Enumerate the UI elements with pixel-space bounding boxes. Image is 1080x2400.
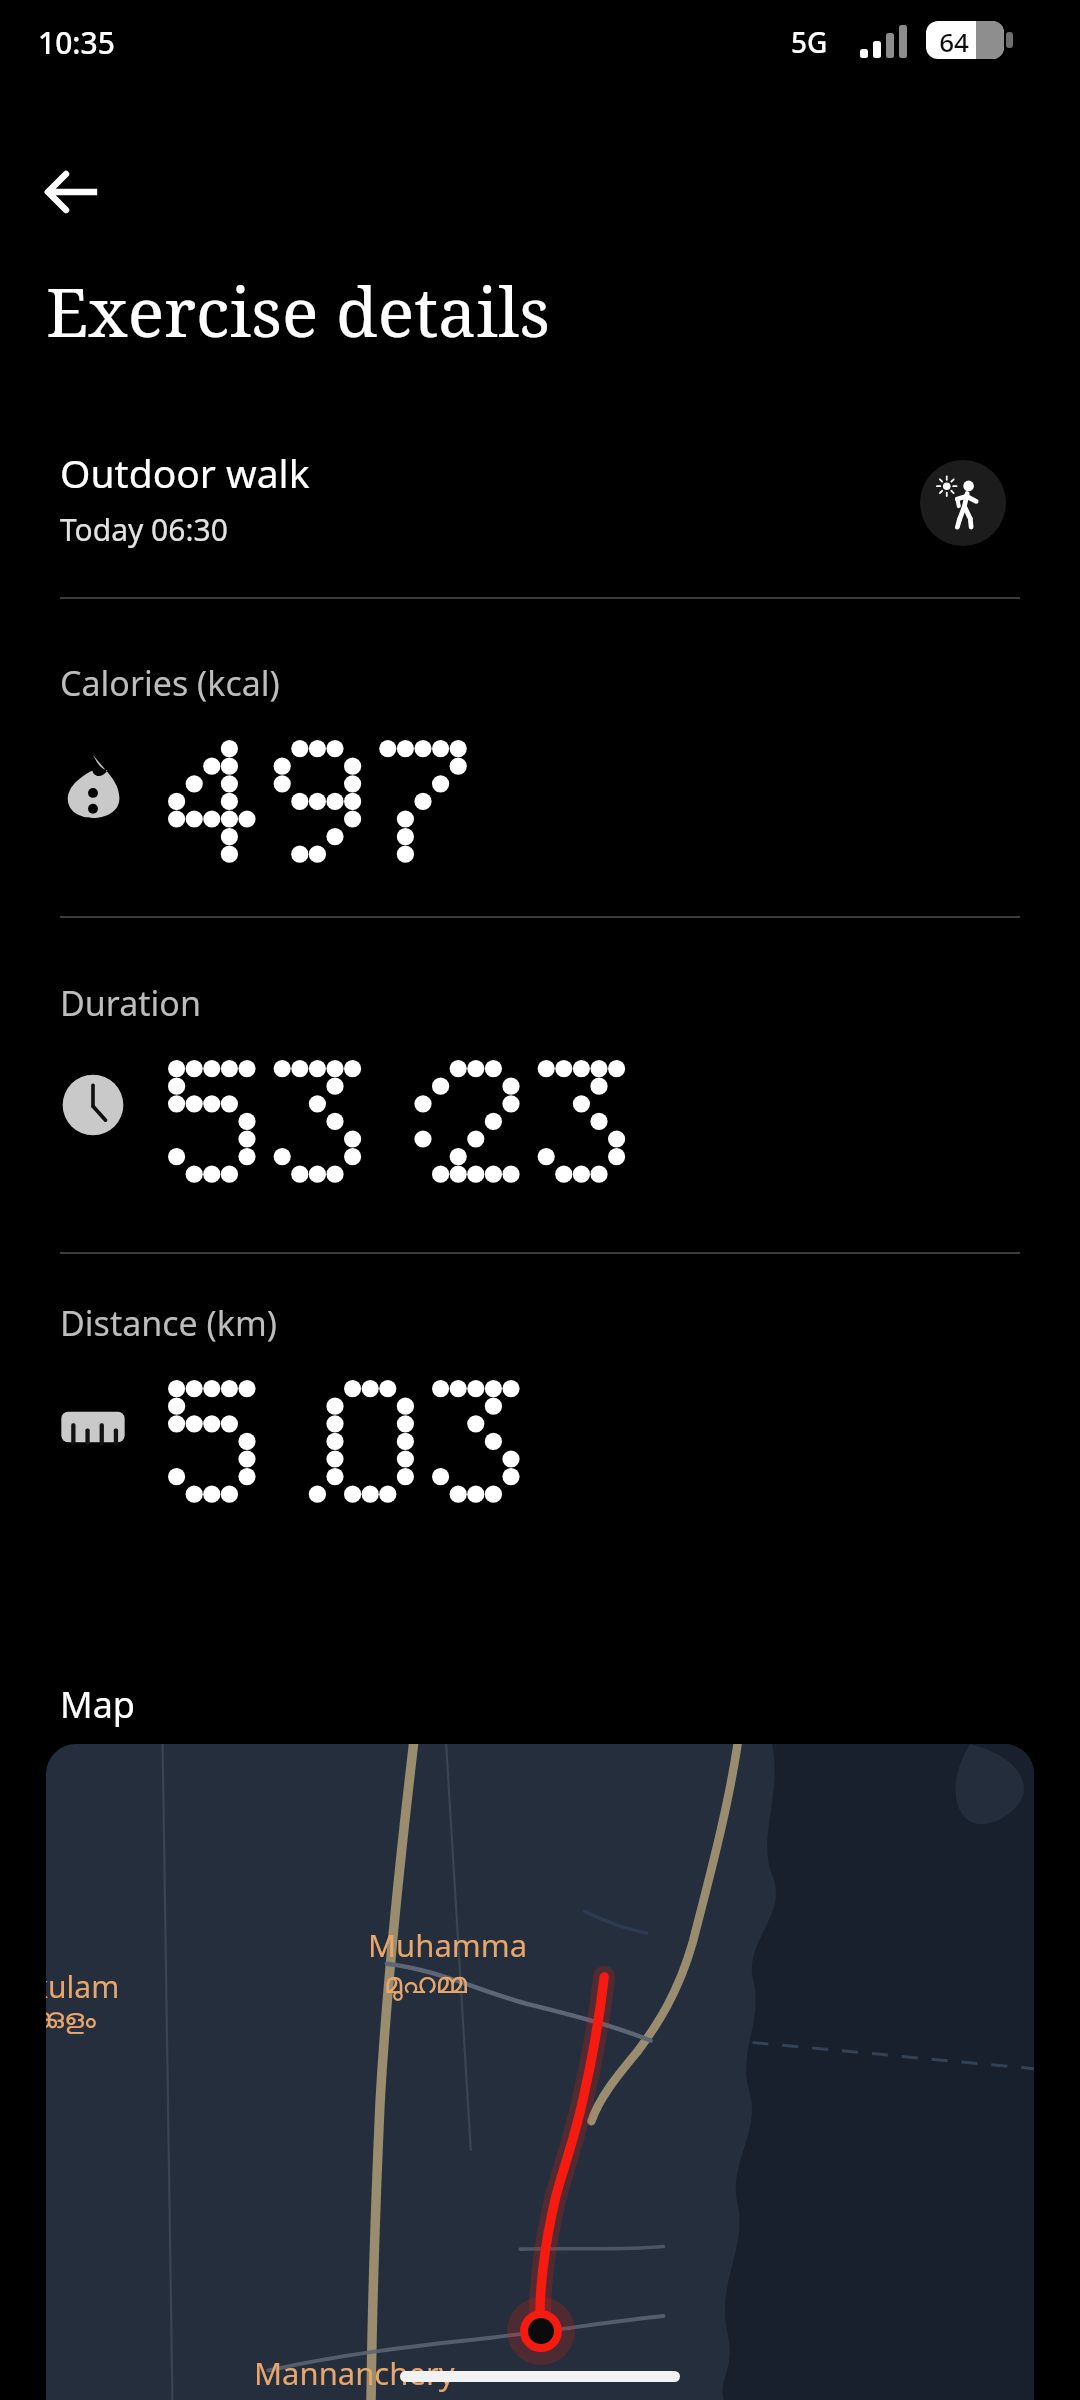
staticText: Distance (km) [60,1300,277,1346]
staticText: ക്കുളം [46,2006,96,2034]
staticText: Duration [60,980,201,1026]
button[interactable]: Outdoor walk activity type [920,460,1006,546]
staticText: Calories (kcal) [60,660,280,706]
staticText: 10:35 [38,22,115,63]
staticText: Today 06:30 [60,509,228,550]
staticText: 64 [928,24,980,59]
staticText: Muhamma [368,1924,528,1966]
staticText: Map [60,1680,135,1729]
button[interactable]: Route map [46,1744,1034,2400]
staticText: kulam [46,1966,120,2007]
staticText: മുഹമ്മ [384,1970,468,1999]
button[interactable]: Back [18,138,126,246]
staticText: Outdoor walk [60,446,310,499]
staticText: 5G [791,23,828,61]
staticText: Mannanchery [254,2352,455,2394]
staticText: Exercise details [46,264,550,357]
